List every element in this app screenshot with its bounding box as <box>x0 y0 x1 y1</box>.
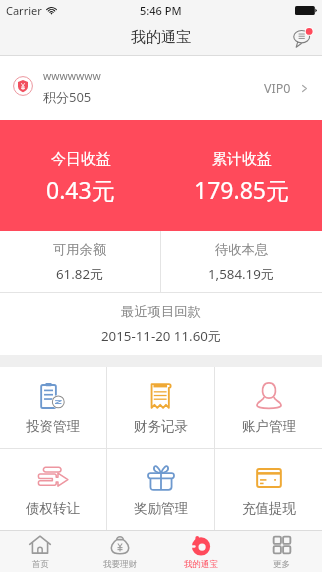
button[interactable]: 账户管理 <box>215 367 322 448</box>
button[interactable]: 我的通宝 <box>160 531 241 572</box>
button[interactable]: 债权转让 <box>0 449 106 530</box>
staticText: 充值提现 <box>242 500 296 517</box>
staticText: 我的通宝 <box>184 559 218 570</box>
staticText: 5:46 PM <box>140 3 182 18</box>
staticText: 更多 <box>273 559 290 570</box>
staticText: 1,584.19元 <box>208 265 275 283</box>
button[interactable]: wwwwwww <box>0 56 322 120</box>
button[interactable]: 奖励管理 <box>107 449 214 530</box>
button[interactable]: 今日收益 <box>0 122 161 233</box>
staticText: 债权转让 <box>26 500 80 517</box>
staticText: wwwwwww <box>43 69 101 83</box>
button[interactable]: 充值提现 <box>215 449 322 530</box>
button[interactable]: 可用余额 <box>0 231 160 292</box>
staticText: 账户管理 <box>242 418 296 435</box>
staticText: 61.82元 <box>56 265 104 283</box>
button[interactable]: 财务记录 <box>107 367 214 448</box>
staticText: 2015-11-20 11.60元 <box>101 327 222 345</box>
staticText: 我要理财 <box>103 559 137 570</box>
staticText: 待收本息 <box>215 241 269 258</box>
staticText: 首页 <box>32 559 49 570</box>
button[interactable]: 累计收益 <box>161 122 322 233</box>
button[interactable]: 首页 <box>0 531 80 572</box>
staticText: VIP0 <box>264 80 291 97</box>
button[interactable]: Messages <box>292 27 314 49</box>
button[interactable]: 待收本息 <box>161 231 322 292</box>
button[interactable]: 最近项目回款 <box>0 293 322 355</box>
staticText: 奖励管理 <box>134 500 188 517</box>
staticText: 179.85元 <box>194 174 289 205</box>
button[interactable]: 我要理财 <box>80 531 160 572</box>
staticText: 我的通宝 <box>131 28 191 47</box>
staticText: Carrier <box>6 3 42 18</box>
staticText: 可用余额 <box>53 241 107 258</box>
staticText: 积分505 <box>43 88 92 106</box>
staticText: 累计收益 <box>212 150 272 169</box>
staticText: 0.43元 <box>46 174 115 205</box>
button[interactable]: 投资管理 <box>0 367 106 448</box>
button[interactable]: 更多 <box>241 531 322 572</box>
staticText: 最近项目回款 <box>121 303 201 320</box>
staticText: 投资管理 <box>26 418 80 435</box>
staticText: 财务记录 <box>134 418 188 435</box>
staticText: 今日收益 <box>51 150 111 169</box>
